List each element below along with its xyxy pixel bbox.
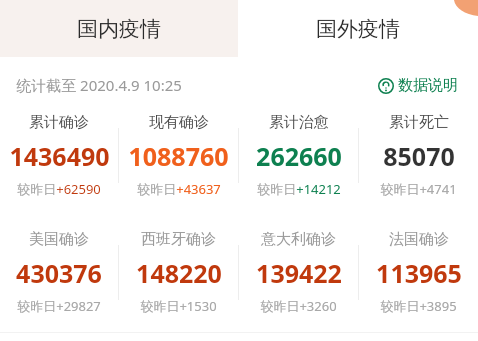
staticText: 西班牙确诊 bbox=[141, 230, 216, 249]
button[interactable]: 西班牙确诊 bbox=[119, 230, 238, 315]
staticText: 1088760 bbox=[128, 139, 229, 173]
staticText: 统计截至 2020.4.9 10:25 bbox=[16, 75, 182, 95]
staticText: 148220 bbox=[136, 256, 222, 290]
staticText: 累计治愈 bbox=[269, 113, 329, 132]
staticText: 数据说明 bbox=[398, 76, 458, 95]
button[interactable]: 现有确诊 bbox=[119, 113, 238, 198]
button[interactable]: 意大利确诊 bbox=[239, 230, 358, 315]
staticText: 较昨日+4741 bbox=[380, 180, 457, 198]
staticText: 较昨日+43637 bbox=[137, 180, 221, 198]
staticText: 430376 bbox=[16, 256, 102, 290]
staticText: 现有确诊 bbox=[149, 113, 209, 132]
staticText: 意大利确诊 bbox=[261, 230, 336, 249]
staticText: 较昨日+62590 bbox=[17, 180, 101, 198]
staticText: 262660 bbox=[256, 139, 342, 173]
staticText: 1436490 bbox=[9, 139, 110, 173]
button[interactable]: 累计死亡 bbox=[359, 113, 478, 198]
staticText: 较昨日+1530 bbox=[140, 297, 217, 315]
staticText: 累计死亡 bbox=[389, 113, 449, 132]
staticText: 139422 bbox=[256, 256, 342, 290]
button[interactable]: 累计治愈 bbox=[239, 113, 358, 198]
staticText: 国外疫情 bbox=[316, 16, 400, 42]
button[interactable]: 国内疫情 bbox=[0, 0, 238, 57]
staticText: 美国确诊 bbox=[29, 230, 89, 249]
staticText: 较昨日+3895 bbox=[380, 297, 457, 315]
button[interactable]: 国外疫情 bbox=[238, 0, 478, 57]
staticText: 法国确诊 bbox=[389, 230, 449, 249]
button[interactable]: 美国确诊 bbox=[0, 230, 118, 315]
button[interactable]: 累计确诊 bbox=[0, 113, 118, 198]
staticText: 国内疫情 bbox=[77, 16, 161, 42]
staticText: 累计确诊 bbox=[29, 113, 89, 132]
staticText: 85070 bbox=[383, 139, 455, 173]
staticText: 113965 bbox=[376, 256, 462, 290]
staticText: 较昨日+29827 bbox=[17, 297, 101, 315]
button[interactable]: 数据说明 bbox=[374, 72, 462, 99]
staticText: 较昨日+3260 bbox=[260, 297, 337, 315]
button[interactable]: 法国确诊 bbox=[359, 230, 478, 315]
staticText: 较昨日+14212 bbox=[257, 180, 341, 198]
